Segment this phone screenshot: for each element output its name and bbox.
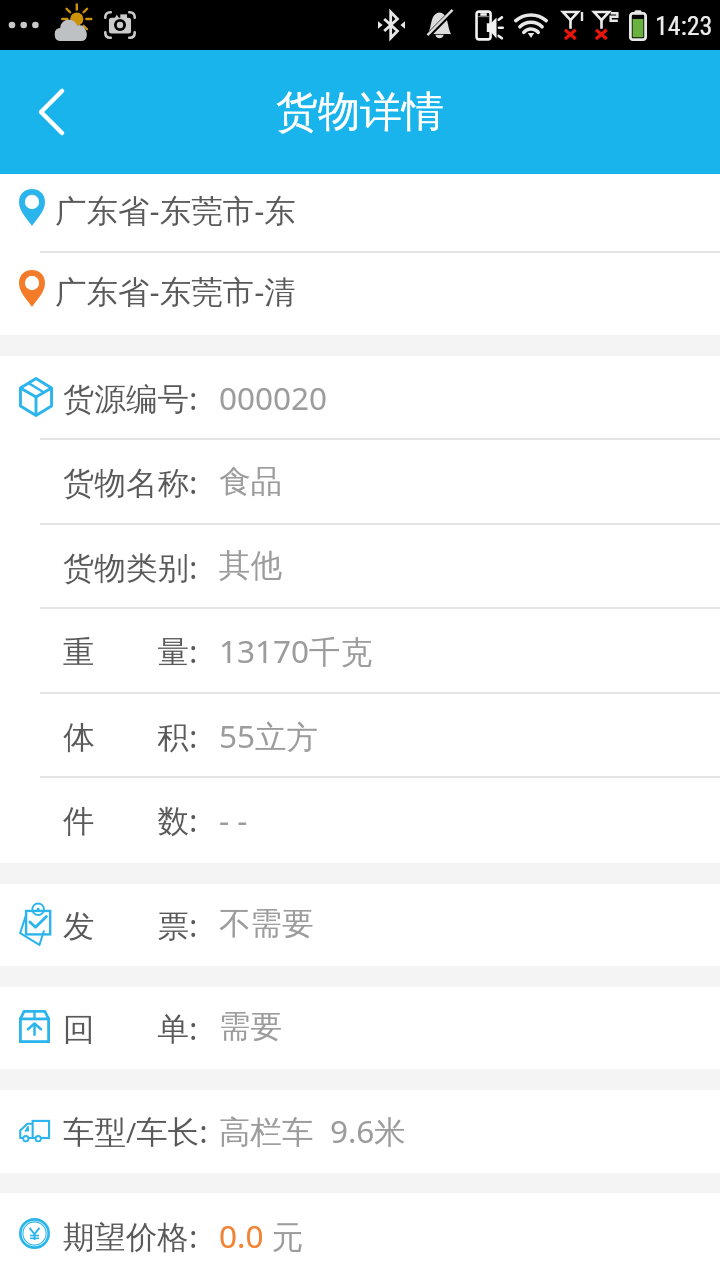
button[interactable]: 车型/车长: bbox=[0, 1090, 720, 1173]
staticText: 14:23 bbox=[655, 11, 713, 41]
staticText: 货物类别: bbox=[63, 545, 198, 588]
staticText: 期望价格: bbox=[63, 1214, 198, 1257]
staticText: 回 单: bbox=[63, 1006, 198, 1049]
staticText: 13170千克 bbox=[219, 629, 373, 672]
button[interactable]: 货物名称: bbox=[0, 440, 720, 525]
staticText: 55立方 bbox=[219, 714, 319, 757]
button[interactable]: 重 量: bbox=[0, 609, 720, 694]
staticText: 体 积: bbox=[63, 714, 198, 757]
staticText: 发 票: bbox=[63, 903, 198, 946]
button[interactable]: Back bbox=[0, 50, 104, 174]
staticText: 件 数: bbox=[63, 798, 198, 841]
button[interactable]: 货源编号: bbox=[0, 356, 720, 440]
staticText: 不需要 bbox=[219, 904, 314, 944]
staticText: 高栏车 9.6米 bbox=[219, 1109, 406, 1152]
button[interactable]: 发 票: bbox=[0, 884, 720, 966]
button[interactable]: 广东省-东莞市-清 bbox=[0, 253, 720, 335]
staticText: 货源编号: bbox=[63, 376, 198, 419]
staticText: 食品 bbox=[219, 462, 282, 502]
staticText: 0.0 元 bbox=[219, 1214, 304, 1257]
staticText: 广东省-东莞市-清 bbox=[55, 269, 296, 312]
staticText: 广东省-东莞市-东 bbox=[55, 188, 296, 231]
staticText: 其他 bbox=[219, 546, 282, 586]
staticText: 货物详情 bbox=[276, 86, 444, 139]
staticText: 货物名称: bbox=[63, 460, 198, 503]
staticText: 重 量: bbox=[63, 629, 198, 672]
staticText: 000020 bbox=[219, 376, 328, 419]
button[interactable]: 广东省-东莞市-东 bbox=[0, 174, 720, 253]
button[interactable]: 期望价格: bbox=[0, 1193, 720, 1280]
button[interactable]: 体 积: bbox=[0, 694, 720, 778]
staticText: - - bbox=[219, 798, 248, 841]
button[interactable]: 回 单: bbox=[0, 987, 720, 1069]
button[interactable]: 货物类别: bbox=[0, 525, 720, 609]
staticText: 车型/车长: bbox=[63, 1109, 208, 1152]
button[interactable]: 件 数: bbox=[0, 778, 720, 863]
staticText: 需要 bbox=[219, 1007, 282, 1047]
